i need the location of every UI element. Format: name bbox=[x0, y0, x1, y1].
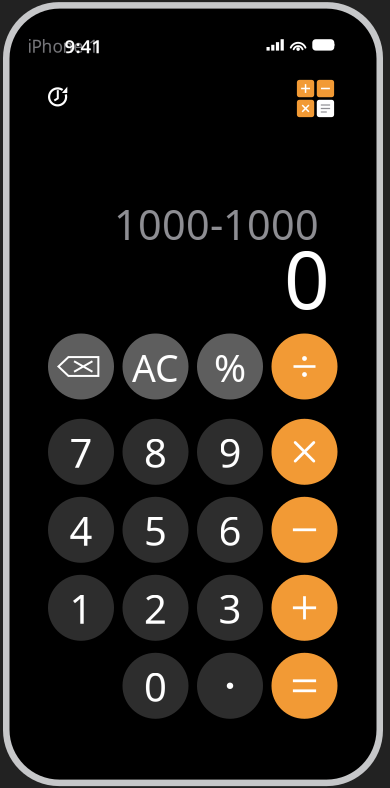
staticText: iPhone 1 bbox=[28, 34, 99, 57]
button[interactable]: Multiply bbox=[271, 419, 337, 485]
button[interactable]: 3 bbox=[197, 575, 263, 641]
button[interactable]: % bbox=[197, 333, 263, 399]
staticText: 9 bbox=[218, 426, 241, 479]
button[interactable]: 0 bbox=[122, 653, 188, 719]
button[interactable]: Decimal point bbox=[197, 653, 263, 719]
button[interactable]: 9 bbox=[197, 419, 263, 485]
staticText: 7 bbox=[69, 426, 92, 479]
button[interactable]: AC bbox=[122, 333, 188, 399]
staticText: 8 bbox=[144, 426, 167, 479]
button[interactable]: Math Notes bbox=[293, 76, 338, 121]
button[interactable]: 8 bbox=[122, 419, 188, 485]
staticText: 4 bbox=[69, 504, 92, 557]
button[interactable]: 6 bbox=[197, 497, 263, 563]
staticText: 5 bbox=[144, 504, 167, 557]
button[interactable]: 7 bbox=[48, 419, 114, 485]
button[interactable]: 4 bbox=[48, 497, 114, 563]
button[interactable]: 5 bbox=[122, 497, 188, 563]
staticText: 6 bbox=[218, 504, 241, 557]
button[interactable]: History bbox=[36, 74, 80, 118]
button[interactable]: 1 bbox=[48, 575, 114, 641]
staticText: 1000-1000 bbox=[114, 197, 319, 251]
button[interactable]: Plus bbox=[271, 575, 337, 641]
staticText: 3 bbox=[218, 582, 241, 635]
staticText: 0 bbox=[144, 660, 167, 713]
staticText: 9:41 bbox=[64, 34, 102, 58]
button[interactable]: Delete bbox=[48, 333, 114, 399]
staticText: AC bbox=[132, 343, 179, 392]
button[interactable]: Equals bbox=[271, 653, 337, 719]
staticText: 0 bbox=[284, 225, 330, 331]
button[interactable]: 2 bbox=[122, 575, 188, 641]
staticText: % bbox=[214, 341, 246, 393]
button[interactable]: Divide bbox=[271, 333, 337, 399]
staticText: 2 bbox=[144, 582, 167, 635]
button[interactable]: Minus bbox=[271, 497, 337, 563]
staticText: 1 bbox=[69, 582, 92, 635]
